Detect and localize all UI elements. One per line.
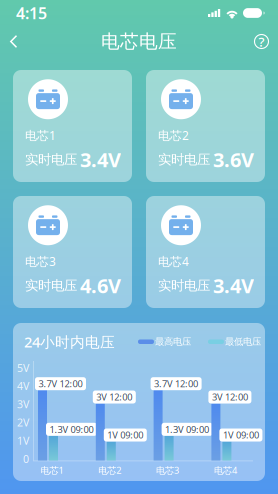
staticText: 3.7V 12:00 — [154, 377, 198, 390]
staticText: 3V 12:00 — [212, 391, 248, 403]
button[interactable]: 电芯3 — [13, 196, 132, 308]
staticText: 3V 12:00 — [96, 391, 132, 403]
staticText: 3V — [17, 397, 29, 411]
button[interactable]: 电芯2 — [146, 70, 265, 182]
staticText: 电芯1 — [40, 464, 63, 476]
button[interactable]: 电芯1 — [13, 70, 132, 182]
staticText: 0 — [23, 452, 29, 466]
staticText: 电芯4 — [158, 253, 189, 269]
staticText: 电芯3 — [156, 464, 179, 476]
staticText: 1V — [17, 433, 29, 448]
staticText: 4V — [17, 379, 29, 393]
staticText: 3.4V — [80, 146, 121, 173]
staticText: 1.3V 09:00 — [165, 423, 209, 435]
staticText: 最低电压 — [225, 336, 261, 347]
staticText: 电芯2 — [158, 127, 189, 143]
button[interactable]: Back — [0, 26, 27, 56]
staticText: 24小时内电压 — [24, 332, 115, 351]
staticText: 实时电压 — [158, 277, 210, 294]
staticText: 3.7V 12:00 — [38, 377, 82, 390]
staticText: 1V 09:00 — [107, 429, 143, 441]
staticText: 5V — [17, 361, 29, 375]
staticText: 实时电压 — [25, 277, 77, 294]
staticText: 2V — [17, 415, 29, 429]
staticText: 3.6V — [213, 146, 254, 173]
staticText: 最高电压 — [155, 336, 191, 347]
staticText: ? — [258, 33, 264, 50]
staticText: 3.4V — [213, 272, 254, 299]
staticText: 实时电压 — [25, 151, 77, 168]
button[interactable]: Help — [245, 26, 278, 57]
button[interactable]: 电芯4 — [146, 196, 265, 308]
staticText: 4.6V — [80, 272, 121, 299]
staticText: 电芯电压 — [101, 30, 177, 53]
staticText: 4:15 — [16, 2, 47, 24]
staticText: 电芯2 — [98, 464, 121, 476]
staticText: 1.3V 09:00 — [49, 423, 93, 435]
staticText: 1V 09:00 — [223, 429, 259, 441]
staticText: 电芯4 — [214, 464, 237, 476]
staticText: 电芯3 — [25, 253, 56, 269]
staticText: 电芯1 — [25, 127, 56, 143]
staticText: 实时电压 — [158, 151, 210, 168]
